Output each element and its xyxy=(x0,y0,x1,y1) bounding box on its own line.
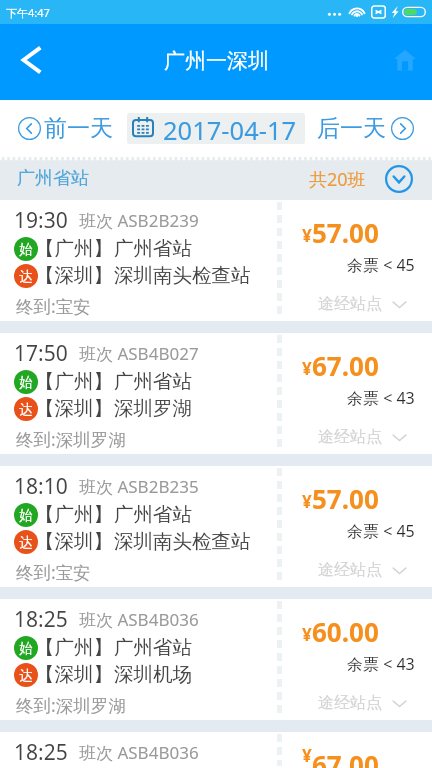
staticText: 67.00 xyxy=(312,348,379,383)
staticText: 途经站点 xyxy=(318,427,382,447)
button[interactable]: 广州省站 xyxy=(0,157,432,200)
button[interactable]: 17:50 xyxy=(0,333,432,454)
staticText: 班次 ASB4B027 xyxy=(79,342,199,365)
staticText: 【广州】 xyxy=(35,369,113,394)
staticText: 下午4:47 xyxy=(6,5,50,20)
staticText: 达 xyxy=(19,667,33,684)
staticText: 67.00 xyxy=(312,747,379,768)
button[interactable]: Home xyxy=(378,35,432,89)
staticText: 【深圳】 xyxy=(35,263,113,288)
staticText: ¥ xyxy=(302,623,312,646)
staticText: 18:25 xyxy=(14,738,68,767)
staticText: 达 xyxy=(19,268,33,285)
staticText: 终到:宝安 xyxy=(16,294,91,318)
staticText: 始 xyxy=(19,241,33,258)
staticText: 广州省站 xyxy=(17,167,89,190)
staticText: 17:50 xyxy=(14,339,68,368)
staticText: 【广州】 xyxy=(35,635,113,660)
staticText: 达 xyxy=(19,401,33,418)
staticText: 广州省站 xyxy=(114,369,192,394)
button[interactable]: 18:10 xyxy=(0,466,432,587)
staticText: 后一天 xyxy=(317,114,386,143)
staticText: 【深圳】 xyxy=(35,396,113,421)
staticText: 【广州】 xyxy=(35,502,113,527)
staticText: 余票 < 45 xyxy=(347,254,415,276)
staticText: ¥ xyxy=(302,357,312,380)
button[interactable]: 18:25 xyxy=(0,599,432,720)
staticText: 始 xyxy=(19,640,33,657)
staticText: ¥ xyxy=(302,490,312,513)
staticText: 57.00 xyxy=(312,481,379,516)
button[interactable]: 前一天 xyxy=(18,114,113,143)
button[interactable]: 2017-04-17 xyxy=(132,113,297,144)
staticText: 【深圳】 xyxy=(35,529,113,554)
staticText: 班次 ASB4B036 xyxy=(79,608,199,631)
staticText: 余票 < 43 xyxy=(347,387,415,409)
staticText: 18:10 xyxy=(14,472,68,501)
staticText: ¥ xyxy=(302,744,312,765)
staticText: 深圳罗湖 xyxy=(114,396,192,421)
staticText: 60.00 xyxy=(312,614,379,649)
staticText: 2017-04-17 xyxy=(163,113,297,144)
staticText: 前一天 xyxy=(44,114,113,143)
button[interactable]: 途经站点 xyxy=(318,560,407,580)
button[interactable]: 途经站点 xyxy=(318,294,407,314)
staticText: 途经站点 xyxy=(318,560,382,580)
staticText: 【广州】 xyxy=(35,236,113,261)
button[interactable]: 后一天 xyxy=(317,114,414,143)
staticText: 始 xyxy=(19,374,33,391)
staticText: 广州一深圳 xyxy=(164,48,269,74)
staticText: 【深圳】 xyxy=(35,662,113,687)
staticText: 广州省站 xyxy=(114,635,192,660)
staticText: 18:25 xyxy=(14,605,68,634)
button[interactable]: 途经站点 xyxy=(318,427,407,447)
staticText: 始 xyxy=(19,507,33,524)
staticText: 班次 ASB2B239 xyxy=(79,209,199,232)
staticText: ¥ xyxy=(302,224,312,247)
staticText: 终到:宝安 xyxy=(16,560,91,584)
button[interactable]: 19:30 xyxy=(0,200,432,321)
staticText: 达 xyxy=(19,534,33,551)
button[interactable]: 18:25 xyxy=(0,732,432,768)
staticText: 余票 < 45 xyxy=(347,520,415,542)
staticText: 深圳南头检查站 xyxy=(114,529,251,554)
staticText: 19:30 xyxy=(14,206,68,235)
staticText: 终到:深圳罗湖 xyxy=(16,693,126,717)
staticText: 广州省站 xyxy=(114,236,192,261)
staticText: 广州省站 xyxy=(114,502,192,527)
staticText: 班次 ASB2B235 xyxy=(79,475,199,498)
staticText: 57.00 xyxy=(312,215,379,250)
staticText: 途经站点 xyxy=(318,294,382,314)
staticText: 余票 < 43 xyxy=(347,653,415,675)
staticText: 终到:深圳罗湖 xyxy=(16,427,126,451)
staticText: 深圳机场 xyxy=(114,662,192,687)
staticText: 深圳南头检查站 xyxy=(114,263,251,288)
button[interactable]: 途经站点 xyxy=(318,693,407,713)
button[interactable]: Back xyxy=(0,24,62,100)
staticText: 途经站点 xyxy=(318,693,382,713)
staticText: 共20班 xyxy=(309,167,366,192)
staticText: 班次 ASB4B036 xyxy=(79,741,199,764)
